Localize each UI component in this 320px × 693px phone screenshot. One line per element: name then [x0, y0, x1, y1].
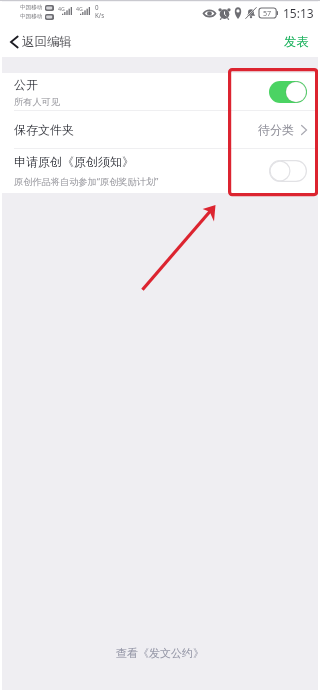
staticText: K/s — [95, 11, 105, 19]
staticText: 4G — [76, 5, 83, 12]
staticText: 待分类 — [258, 122, 294, 137]
staticText: 4G — [58, 5, 65, 12]
button[interactable]: 返回编辑 — [0, 30, 82, 54]
staticText: 15:13 — [283, 5, 314, 21]
button[interactable]: 申请原创《原创须知》 — [0, 149, 320, 193]
button[interactable]: 公开 — [0, 73, 320, 110]
staticText: 发表 — [284, 34, 309, 49]
staticText: 保存文件夹 — [14, 122, 74, 137]
staticText: 57 — [263, 8, 272, 18]
staticText: 返回编辑 — [22, 34, 72, 50]
staticText: 申请原创《原创须知》 — [14, 154, 134, 169]
button[interactable]: 申请原创开关 已关闭 — [269, 160, 307, 182]
button[interactable]: 发表 — [270, 30, 320, 53]
button[interactable]: 查看《发文公约》 — [0, 632, 320, 674]
staticText: 中国移动 — [20, 4, 43, 11]
staticText: 0 — [95, 3, 99, 11]
staticText: 所有人可见 — [14, 96, 60, 108]
button[interactable]: 保存文件夹 — [0, 111, 320, 148]
staticText: 查看《发文公约》 — [116, 646, 204, 660]
staticText: 公开 — [14, 77, 38, 92]
button[interactable]: 公开开关 已开启 — [269, 81, 307, 103]
staticText: 原创作品将自动参加“原创奖励计划” — [14, 175, 159, 188]
staticText: 中国移动 — [20, 13, 43, 20]
